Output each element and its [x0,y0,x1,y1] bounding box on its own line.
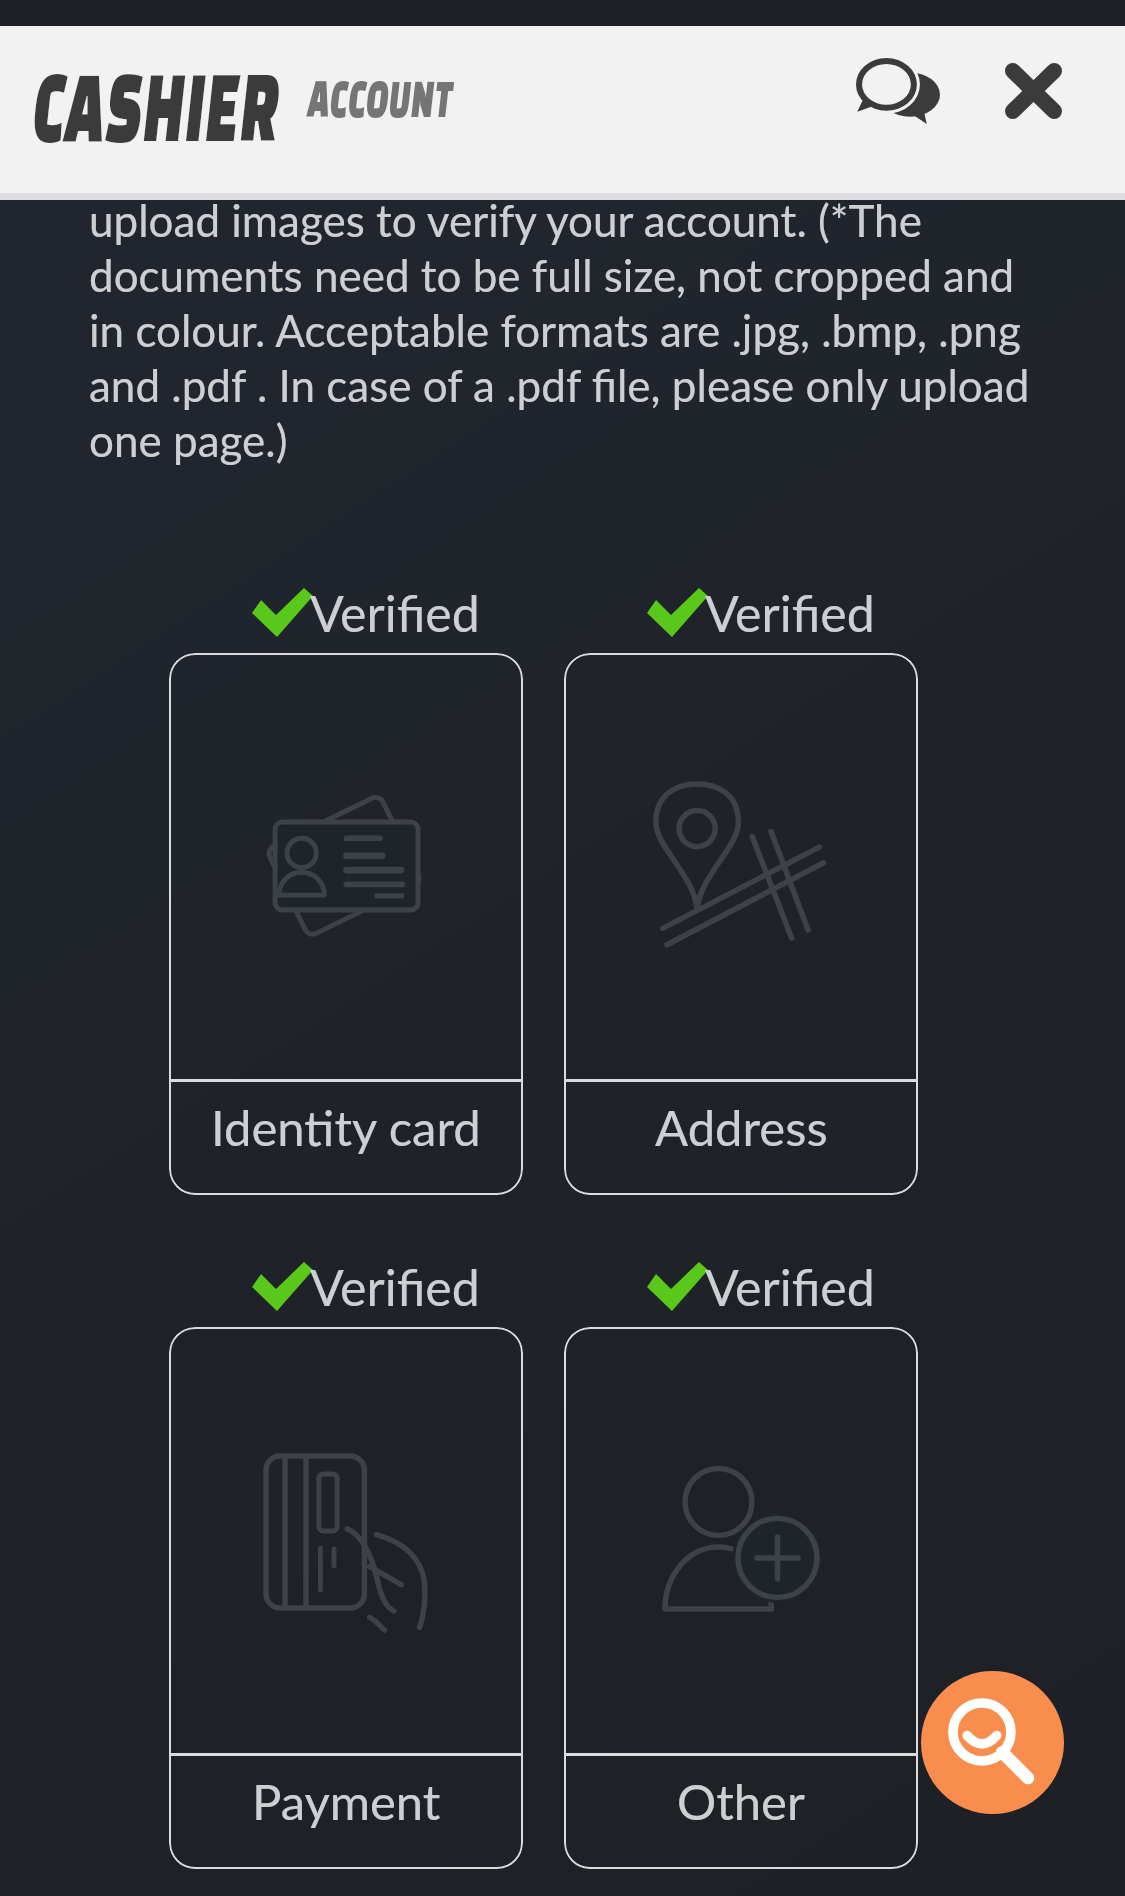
staticText: CASHIER [33,49,280,159]
button[interactable]: Payment [169,1327,523,1869]
staticText: ACCOUNT [308,67,453,128]
staticText: Verified [705,1257,875,1317]
staticText: Verified [705,583,875,643]
staticText: Other [677,1772,805,1831]
button[interactable]: Other [564,1327,918,1869]
staticText: Verified [310,1257,480,1317]
staticText: Address [655,1098,828,1157]
staticText: Payment [252,1772,441,1831]
button[interactable]: Chat [836,38,960,144]
button[interactable]: Address [564,653,918,1195]
staticText: Verified [310,583,480,643]
button[interactable]: Identity card [169,653,523,1195]
staticText: upload images to verify your account. (*… [89,194,1051,467]
button[interactable]: Search [921,1671,1064,1814]
staticText: Identity card [211,1098,481,1157]
button[interactable]: Close [973,38,1093,144]
